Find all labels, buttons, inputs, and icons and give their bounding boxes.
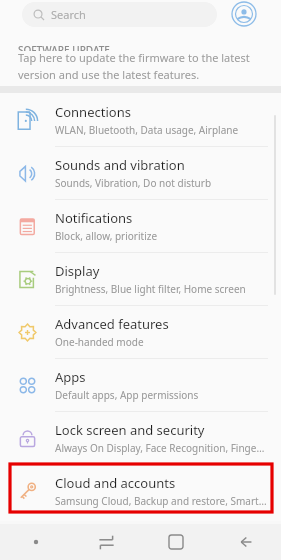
staticText: Default apps, App permissions [55, 388, 199, 402]
staticText: One-handed mode [55, 335, 144, 349]
staticText: Display [55, 262, 100, 280]
staticText: Notifications [55, 209, 133, 227]
staticText: Apps [55, 368, 86, 386]
button[interactable]: Home [141, 535, 211, 549]
button[interactable]: Display [0, 252, 281, 305]
button[interactable]: Account [230, 0, 258, 28]
button[interactable]: Recents [71, 534, 141, 551]
button[interactable]: Search [22, 2, 217, 27]
button[interactable]: Back [211, 534, 281, 550]
staticText: WLAN, Bluetooth, Data usage, Airplane mo… [55, 123, 267, 137]
button[interactable]: Apps [0, 358, 281, 411]
staticText: Samsung Cloud, Backup and restore, Smart… [55, 494, 267, 508]
button[interactable]: Sounds and vibration [0, 146, 281, 199]
button[interactable]: SOFTWARE UPDATE [0, 36, 281, 86]
staticText: Advanced features [55, 315, 169, 333]
staticText: version and use the latest features. [18, 67, 200, 82]
staticText: Lock screen and security [55, 421, 205, 439]
button[interactable]: Notifications [0, 199, 281, 252]
button[interactable]: Lock screen and security [0, 411, 281, 464]
staticText: Brightness, Blue light filter, Home scre… [55, 282, 246, 296]
staticText: SOFTWARE UPDATE [18, 43, 110, 51]
staticText: Block, allow, prioritize [55, 229, 158, 243]
button[interactable]: Advanced features [0, 305, 281, 358]
staticText: Always On Display, Face Recognition, Fin… [55, 441, 265, 455]
staticText: Sounds, Vibration, Do not disturb [55, 176, 212, 190]
button[interactable]: Connections [0, 93, 281, 146]
button[interactable]: Cloud and accounts [0, 464, 281, 517]
staticText: Connections [55, 103, 131, 121]
staticText: Cloud and accounts [55, 474, 176, 492]
staticText: Search [51, 7, 86, 22]
staticText: Tap here to update the firmware to the l… [18, 50, 250, 65]
staticText: Sounds and vibration [55, 156, 185, 174]
